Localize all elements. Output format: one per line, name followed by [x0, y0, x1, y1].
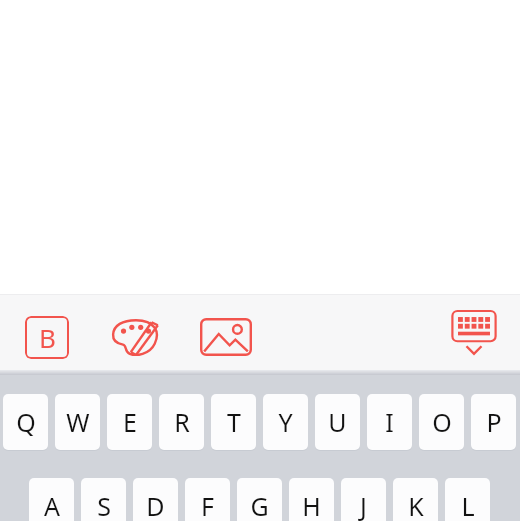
staticText: R: [174, 405, 190, 439]
staticText: L: [461, 489, 475, 521]
staticText: S: [97, 489, 111, 521]
button[interactable]: R: [159, 394, 204, 450]
button[interactable]: Hide keyboard: [446, 309, 502, 361]
staticText: Q: [16, 405, 36, 439]
staticText: W: [66, 405, 90, 439]
button[interactable]: K: [393, 478, 438, 521]
staticText: T: [227, 405, 241, 439]
staticText: E: [123, 405, 137, 439]
button[interactable]: U: [315, 394, 360, 450]
staticText: G: [250, 489, 269, 521]
button[interactable]: E: [107, 394, 152, 450]
staticText: H: [302, 489, 321, 521]
button[interactable]: L: [445, 478, 490, 521]
button[interactable]: F: [185, 478, 230, 521]
staticText: K: [408, 489, 424, 521]
button[interactable]: P: [471, 394, 516, 450]
button[interactable]: Q: [3, 394, 48, 450]
button[interactable]: D: [133, 478, 178, 521]
staticText: F: [201, 489, 214, 521]
staticText: D: [146, 489, 165, 521]
staticText: O: [432, 405, 452, 439]
button[interactable]: A: [29, 478, 74, 521]
button[interactable]: Insert image: [198, 314, 254, 360]
staticText: Y: [278, 405, 293, 439]
button[interactable]: G: [237, 478, 282, 521]
button[interactable]: H: [289, 478, 334, 521]
staticText: J: [360, 489, 367, 521]
button[interactable]: T: [211, 394, 256, 450]
button[interactable]: O: [419, 394, 464, 450]
button[interactable]: Bold: [25, 315, 69, 359]
staticText: B: [39, 320, 56, 355]
button[interactable]: I: [367, 394, 412, 450]
button[interactable]: W: [55, 394, 100, 450]
staticText: P: [486, 405, 502, 439]
staticText: I: [385, 405, 394, 439]
button[interactable]: J: [341, 478, 386, 521]
button[interactable]: Color palette: [108, 313, 164, 361]
staticText: U: [328, 405, 347, 439]
staticText: A: [44, 489, 60, 521]
button[interactable]: S: [81, 478, 126, 521]
button[interactable]: Y: [263, 394, 308, 450]
